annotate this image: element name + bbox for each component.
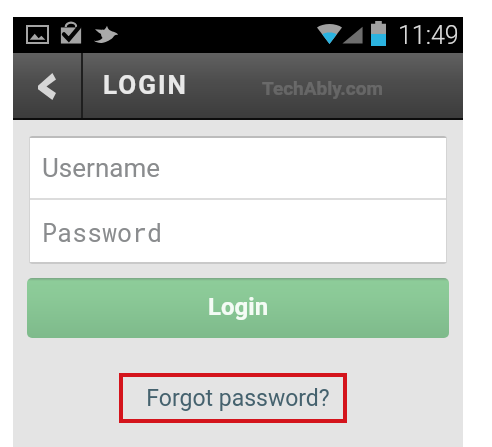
staticText: Username xyxy=(42,153,160,183)
button[interactable]: Password xyxy=(29,200,447,262)
staticText: TechAbly.com xyxy=(262,77,383,99)
staticText: LOGIN xyxy=(103,70,188,100)
staticText: Login xyxy=(208,293,269,321)
button[interactable]: Forgot password? xyxy=(123,377,343,419)
staticText: Password xyxy=(42,216,163,249)
button[interactable]: Username xyxy=(29,136,447,198)
button[interactable]: Back xyxy=(13,53,81,120)
staticText: 11:49 xyxy=(398,21,459,50)
button[interactable]: Login xyxy=(27,278,449,338)
staticText: Forgot password? xyxy=(146,385,330,412)
